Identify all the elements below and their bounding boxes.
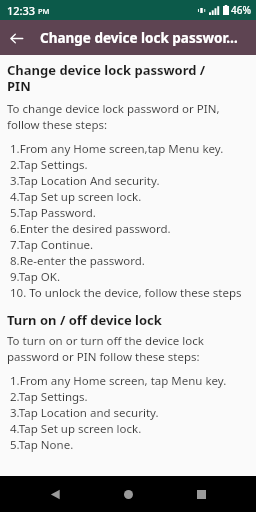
staticText: 6.Enter the desired password. xyxy=(10,221,171,237)
staticText: 3.Tap Location And security. xyxy=(10,173,160,189)
button[interactable]: Back xyxy=(37,476,73,512)
staticText: To turn on or turn off the device lock p… xyxy=(7,333,204,364)
staticText: 5.Tap None. xyxy=(10,437,74,453)
staticText: 2.Tap Settings. xyxy=(10,389,88,405)
staticText: 3.Tap Location and security. xyxy=(10,405,159,421)
staticText: 4.Tap Set up screen lock. xyxy=(10,189,142,205)
staticText: 5.Tap Password. xyxy=(10,205,96,221)
staticText: 12:33 xyxy=(7,3,36,18)
staticText: 9.Tap OK. xyxy=(10,269,61,285)
staticText: 8.Re-enter the password. xyxy=(10,253,145,269)
staticText: 1.From any Home screen, tap Menu key. xyxy=(10,373,227,389)
staticText: 10. To unlock the device, follow these s… xyxy=(10,285,242,301)
staticText: Turn on / off device lock xyxy=(7,311,162,329)
button[interactable]: Recent apps xyxy=(183,476,219,512)
staticText: Change device lock passwor… xyxy=(40,29,238,47)
staticText: 7.Tap Continue. xyxy=(10,237,94,253)
staticText: To change device lock password or PIN, f… xyxy=(7,101,220,132)
button[interactable]: Back xyxy=(0,22,32,54)
staticText: 4.Tap Set up screen lock. xyxy=(10,421,142,437)
staticText: PM xyxy=(38,6,50,16)
staticText: Change device lock password / PIN xyxy=(7,61,206,94)
button[interactable]: Home xyxy=(110,476,146,512)
staticText: 1.From any Home screen,tap Menu key. xyxy=(10,141,224,157)
staticText: 46% xyxy=(231,3,251,17)
staticText: 2.Tap Settings. xyxy=(10,157,88,173)
